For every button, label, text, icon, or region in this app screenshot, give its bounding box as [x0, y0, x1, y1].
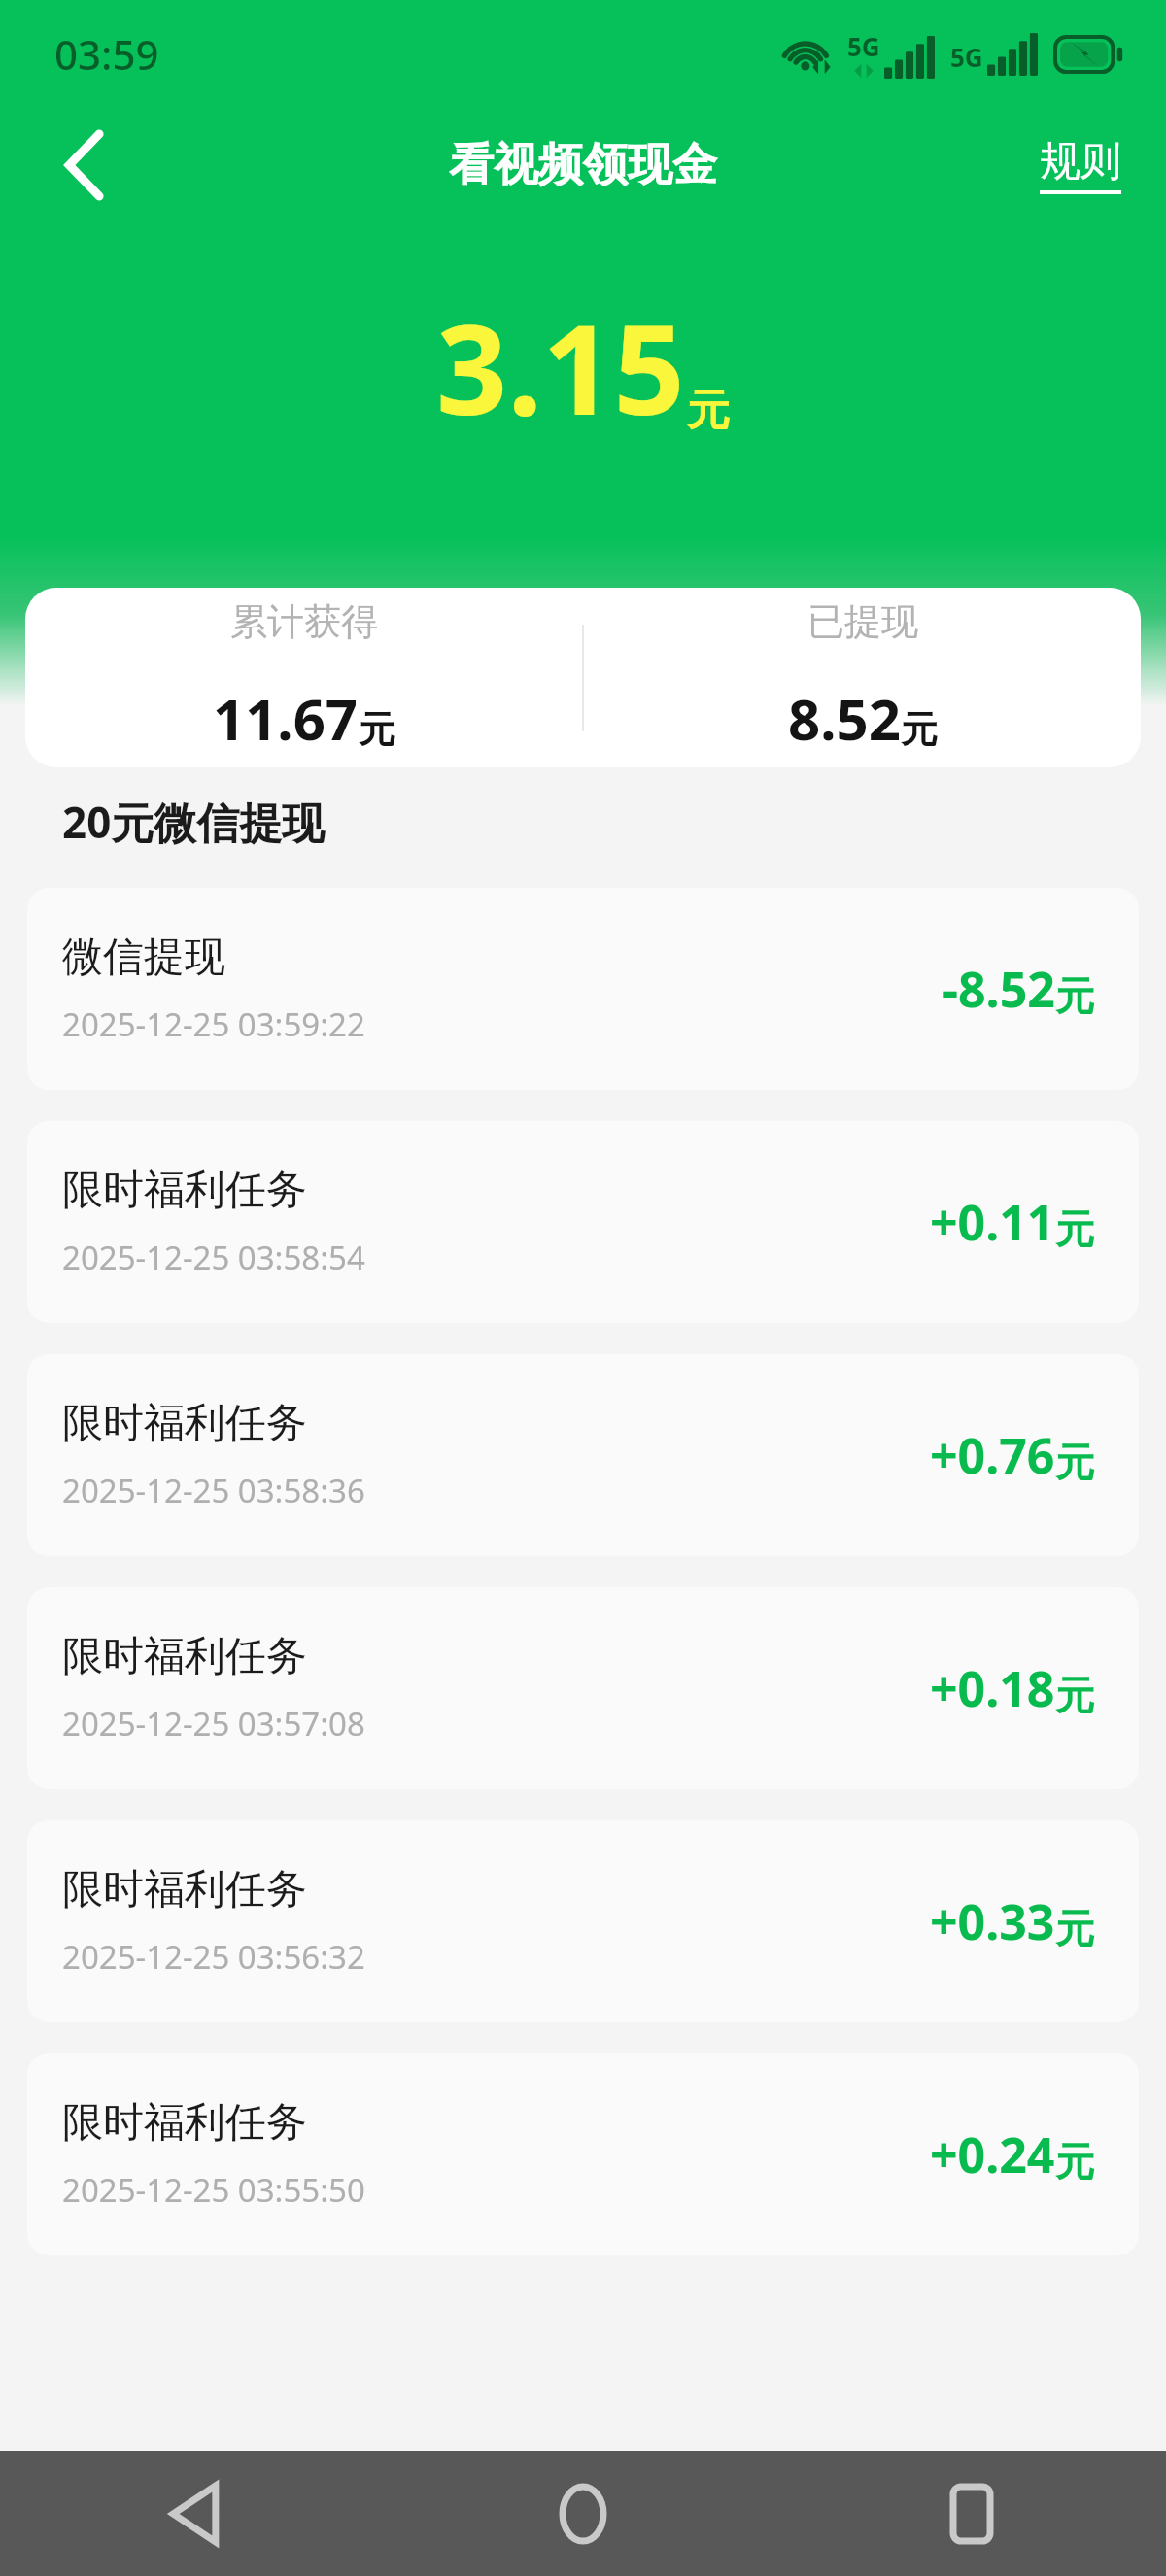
button[interactable]: 限时福利任务: [27, 1121, 1139, 1323]
staticText: 5G: [847, 29, 880, 63]
staticText: 2025-12-25 03:58:54: [62, 1236, 365, 1279]
button[interactable]: Back: [0, 2451, 389, 2576]
staticText: +0.76: [930, 1422, 1055, 1488]
button[interactable]: 限时福利任务: [27, 1354, 1139, 1556]
staticText: 元: [1055, 2137, 1094, 2186]
staticText: 元: [901, 706, 938, 753]
staticText: 8.52: [788, 680, 901, 757]
button[interactable]: 限时福利任务: [27, 2053, 1139, 2255]
staticText: 累计获得: [230, 598, 378, 645]
staticText: +0.11: [930, 1189, 1055, 1255]
staticText: 看视频领现金: [449, 137, 717, 193]
staticText: 限时福利任务: [62, 1631, 307, 1682]
staticText: 已提现: [807, 598, 918, 645]
staticText: 元: [1055, 1904, 1094, 1952]
staticText: 限时福利任务: [62, 1165, 307, 1216]
staticText: 元: [1055, 1671, 1094, 1719]
staticText: 元: [1055, 1438, 1094, 1486]
staticText: 03:59: [54, 26, 159, 82]
staticText: +0.24: [930, 2121, 1055, 2187]
staticText: 元: [1055, 1204, 1094, 1253]
button[interactable]: Back: [39, 119, 132, 212]
staticText: 20元微信提现: [62, 793, 326, 851]
staticText: 微信提现: [62, 932, 225, 983]
button[interactable]: 限时福利任务: [27, 1820, 1139, 2022]
staticText: 元: [359, 706, 395, 753]
button[interactable]: 微信提现: [27, 888, 1139, 1090]
staticText: 3.15: [436, 282, 685, 451]
staticText: 元: [687, 384, 730, 437]
button[interactable]: 限时福利任务: [27, 1587, 1139, 1789]
staticText: 元: [1055, 971, 1094, 1020]
staticText: 2025-12-25 03:56:32: [62, 1935, 365, 1979]
staticText: 规则: [1040, 136, 1121, 187]
staticText: 限时福利任务: [62, 1398, 307, 1449]
staticText: +0.33: [930, 1888, 1055, 1954]
staticText: 2025-12-25 03:57:08: [62, 1702, 365, 1746]
button[interactable]: 规则: [1040, 136, 1121, 194]
staticText: 2025-12-25 03:55:50: [62, 2168, 365, 2212]
staticText: 11.67: [213, 680, 359, 757]
button[interactable]: Home: [389, 2451, 777, 2576]
button[interactable]: 累计获得: [25, 598, 582, 757]
staticText: -8.52: [943, 956, 1055, 1022]
button[interactable]: 已提现: [584, 598, 1141, 757]
staticText: 2025-12-25 03:59:22: [62, 1002, 365, 1046]
button[interactable]: Recent apps: [777, 2451, 1166, 2576]
staticText: 2025-12-25 03:58:36: [62, 1469, 365, 1512]
staticText: 限时福利任务: [62, 2097, 307, 2149]
staticText: 5G: [950, 40, 983, 74]
staticText: +0.18: [930, 1655, 1055, 1721]
staticText: 限时福利任务: [62, 1864, 307, 1915]
